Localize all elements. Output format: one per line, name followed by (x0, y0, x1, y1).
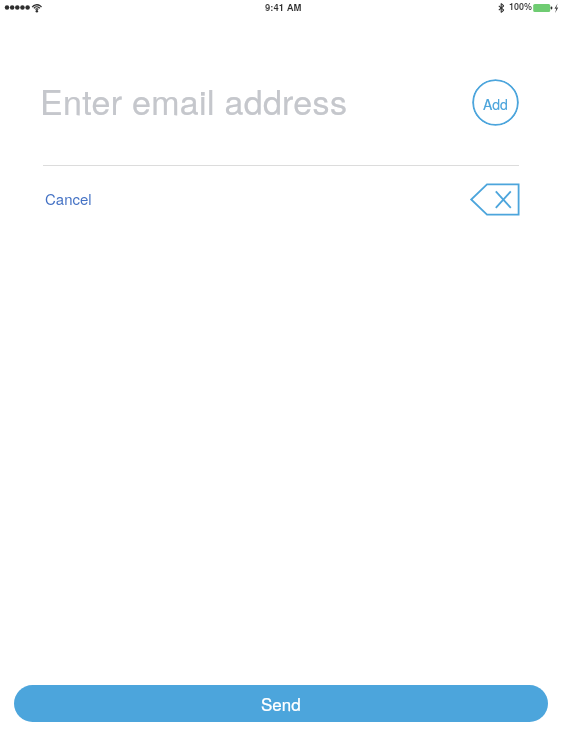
staticText: Cancel (45, 188, 92, 209)
staticText: 9:41 AM (265, 0, 302, 14)
staticText: Enter email address (40, 76, 348, 123)
button[interactable]: Cancel (41, 183, 95, 217)
staticText: Add (483, 94, 508, 114)
staticText: 100% (509, 0, 533, 13)
button[interactable]: Delete (470, 183, 520, 217)
button[interactable]: Enter email address (40, 79, 460, 126)
button[interactable]: Add (472, 79, 519, 126)
button[interactable]: Send (14, 685, 548, 722)
staticText: Send (261, 691, 301, 715)
